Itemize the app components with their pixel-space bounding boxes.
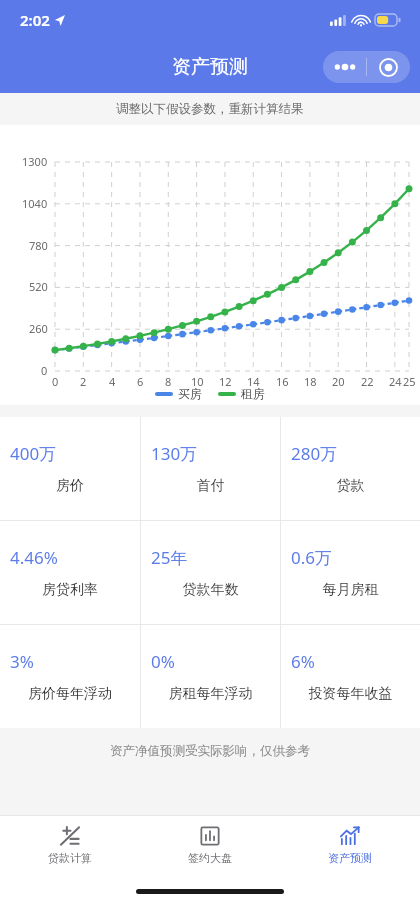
staticText: 6% xyxy=(291,650,315,673)
staticText: 0.6万 xyxy=(291,546,333,569)
staticText: 0 xyxy=(52,374,59,389)
staticText: 租房 xyxy=(241,386,265,401)
staticText: 24 xyxy=(389,374,402,389)
staticText: 18 xyxy=(304,374,317,389)
staticText: 贷款 xyxy=(291,477,410,495)
staticText: 16 xyxy=(276,374,289,389)
staticText: 12 xyxy=(219,374,232,389)
button[interactable]: 280万 xyxy=(281,417,420,520)
staticText: 1300 xyxy=(22,154,48,169)
staticText: 280万 xyxy=(291,442,338,465)
button[interactable]: 6% xyxy=(281,625,420,728)
staticText: 0% xyxy=(151,650,175,673)
staticText: 首付 xyxy=(151,477,270,495)
staticText: 3% xyxy=(10,650,34,673)
staticText: 房贷利率 xyxy=(10,581,130,599)
staticText: 6 xyxy=(137,374,144,389)
staticText: 4 xyxy=(109,374,116,389)
staticText: 房租每年浮动 xyxy=(151,685,270,703)
staticText: 4.46% xyxy=(10,546,58,569)
staticText: 400万 xyxy=(10,442,57,465)
staticText: 2 xyxy=(80,374,87,389)
staticText: 投资每年收益 xyxy=(291,685,410,703)
staticText: 20 xyxy=(332,374,345,389)
staticText: 资产预测 xyxy=(328,851,372,865)
button[interactable]: 资产预测 xyxy=(280,816,420,872)
button[interactable]: 3% xyxy=(0,625,140,728)
button[interactable]: More and capsule menu xyxy=(323,51,410,83)
staticText: 每月房租 xyxy=(291,581,410,599)
staticText: 130万 xyxy=(151,442,198,465)
staticText: 房价每年浮动 xyxy=(10,685,130,703)
staticText: 贷款计算 xyxy=(48,851,92,865)
button[interactable]: 130万 xyxy=(141,417,280,520)
staticText: 资产预测 xyxy=(172,55,248,79)
staticText: 买房 xyxy=(178,386,202,401)
button[interactable]: 贷款计算 xyxy=(0,816,140,872)
staticText: 调整以下假设参数，重新计算结果 xyxy=(116,101,304,117)
staticText: 25 xyxy=(403,374,416,389)
staticText: 1040 xyxy=(22,196,48,211)
button[interactable]: 400万 xyxy=(0,417,140,520)
staticText: 25年 xyxy=(151,546,188,569)
staticText: 8 xyxy=(165,374,172,389)
button[interactable]: 0% xyxy=(141,625,280,728)
button[interactable]: 25年 xyxy=(141,521,280,624)
staticText: 贷款年数 xyxy=(151,581,270,599)
staticText: 22 xyxy=(361,374,374,389)
staticText: 0 xyxy=(41,363,48,378)
button[interactable]: 4.46% xyxy=(0,521,140,624)
staticText: 10 xyxy=(191,374,204,389)
staticText: 资产净值预测受实际影响，仅供参考 xyxy=(110,743,310,759)
staticText: 签约大盘 xyxy=(188,851,232,865)
staticText: 房价 xyxy=(10,477,130,495)
button[interactable]: 签约大盘 xyxy=(140,816,280,872)
staticText: 2:02 xyxy=(20,10,50,30)
staticText: 780 xyxy=(29,238,48,253)
button[interactable]: 0.6万 xyxy=(281,521,420,624)
staticText: 260 xyxy=(29,321,48,336)
staticText: 520 xyxy=(29,279,48,294)
staticText: 14 xyxy=(247,374,260,389)
